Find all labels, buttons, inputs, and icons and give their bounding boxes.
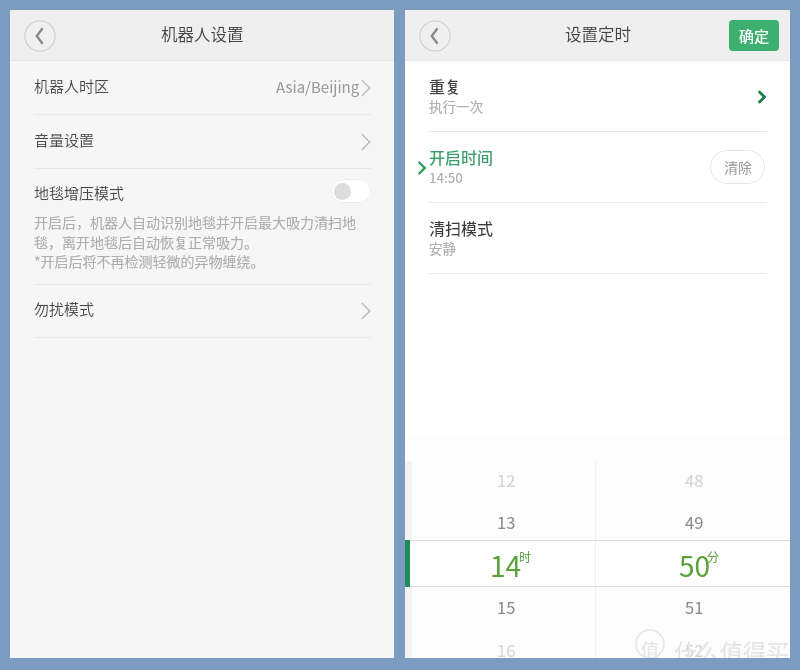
staticText: 开启时间 <box>429 145 494 168</box>
staticText: 时 <box>519 548 532 565</box>
staticText: 16 <box>497 638 516 662</box>
staticText: 机器人时区 <box>34 75 110 97</box>
staticText: 执行一次 <box>429 96 483 116</box>
staticText: 地毯增压模式 <box>34 182 125 204</box>
staticText: 13 <box>497 510 516 534</box>
button[interactable]: Carpet boost toggle <box>331 179 371 203</box>
button[interactable]: 勿扰模式 <box>10 285 394 337</box>
staticText: 12 <box>497 468 516 492</box>
staticText: 确定 <box>739 25 770 47</box>
staticText: 清除 <box>724 157 752 177</box>
staticText: 分 <box>707 548 720 565</box>
staticText: 设置定时 <box>565 22 631 46</box>
staticText: 重复 <box>429 74 462 97</box>
staticText: 48 <box>685 468 704 492</box>
button[interactable]: 确定 <box>729 20 779 51</box>
button[interactable]: 清扫模式 <box>405 203 790 273</box>
button[interactable]: Back <box>419 20 451 52</box>
button[interactable]: 清除 <box>710 150 765 184</box>
button[interactable]: 机器人时区 <box>10 61 394 114</box>
staticText: 50 <box>679 545 711 586</box>
button[interactable]: 地毯增压模式 <box>10 169 394 217</box>
staticText: Asia/Beijing <box>276 76 360 98</box>
staticText: 机器人设置 <box>161 22 244 46</box>
button[interactable]: 开启时间 <box>405 132 790 202</box>
staticText: 什么值得买 <box>674 634 789 658</box>
staticText: 勿扰模式 <box>34 298 95 320</box>
staticText: 值 <box>641 636 659 658</box>
staticText: 安静 <box>429 238 456 258</box>
staticText: 音量设置 <box>34 129 95 151</box>
staticText: 开启后，机器人自动识别地毯并开启最大吸力清扫地 毯，离开地毯后自动恢复正常吸力。… <box>34 212 356 271</box>
button[interactable]: 音量设置 <box>10 115 394 168</box>
staticText: 51 <box>685 595 704 619</box>
button[interactable]: Back <box>24 20 56 52</box>
button[interactable]: 重复 <box>405 61 790 131</box>
staticText: 15 <box>497 595 516 619</box>
staticText: 49 <box>685 510 704 534</box>
staticText: 清扫模式 <box>429 216 494 239</box>
staticText: 52 <box>685 638 704 662</box>
staticText: 14:50 <box>429 167 463 187</box>
staticText: 14 <box>490 545 522 586</box>
